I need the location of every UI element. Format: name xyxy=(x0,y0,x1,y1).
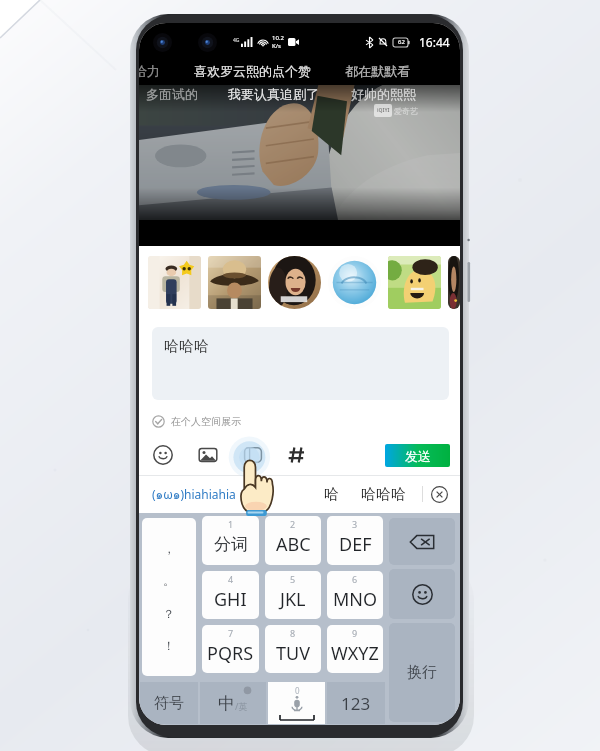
staticText: ABC xyxy=(276,532,311,557)
staticText: MNO xyxy=(333,587,378,612)
staticText: JKL xyxy=(280,587,306,612)
button[interactable]: 8 xyxy=(265,625,321,673)
staticText: 哈哈哈 xyxy=(361,485,406,504)
button[interactable]: Emoji xyxy=(153,445,173,465)
staticText: K/s xyxy=(272,42,281,50)
staticText: 16:44 xyxy=(419,34,450,50)
button[interactable]: 在个人空间展示 xyxy=(152,413,241,429)
button[interactable]: 符号 xyxy=(140,682,198,724)
staticText: 分词 xyxy=(214,534,248,555)
staticText: GHI xyxy=(214,587,247,612)
staticText: ！ xyxy=(163,638,175,653)
staticText: (๑ω๑)hiahiahia xyxy=(152,485,236,504)
button[interactable]: 0 xyxy=(268,682,325,724)
button[interactable]: Backspace xyxy=(389,518,455,565)
staticText: 好帅的熙熙 xyxy=(351,86,416,102)
button[interactable]: 7 xyxy=(202,625,259,673)
staticText: 爱奇艺 xyxy=(394,106,418,116)
staticText: 62 xyxy=(398,38,405,46)
staticText: 我要认真追剧了 xyxy=(228,86,319,102)
staticText: WXYZ xyxy=(331,641,379,666)
staticText: 。 xyxy=(163,573,175,588)
staticText: 4 xyxy=(228,573,234,585)
staticText: 3 xyxy=(352,518,358,530)
staticText: 换行 xyxy=(407,663,437,682)
button[interactable]: 中 xyxy=(200,682,266,724)
button[interactable] xyxy=(388,256,441,309)
staticText: 123 xyxy=(341,692,371,715)
staticText: 9 xyxy=(352,627,358,639)
button[interactable]: Close candidates xyxy=(431,486,448,503)
staticText: 5 xyxy=(290,573,296,585)
staticText: 发送 xyxy=(405,448,431,464)
staticText: 1 xyxy=(228,518,234,530)
button[interactable]: 6 xyxy=(327,571,383,619)
button[interactable]: 2 xyxy=(265,516,321,565)
staticText: ， xyxy=(163,541,175,556)
staticText: 在个人空间展示 xyxy=(171,415,241,428)
staticText: 多面试的 xyxy=(146,86,198,102)
staticText: 10.2 xyxy=(272,34,284,42)
button[interactable]: 1 xyxy=(202,516,259,565)
button[interactable] xyxy=(148,256,201,309)
staticText: 0 xyxy=(295,685,300,696)
button[interactable]: 换行 xyxy=(389,623,455,722)
staticText: 2 xyxy=(290,518,296,530)
staticText: 7 xyxy=(228,627,234,639)
button[interactable]: 4 xyxy=(202,571,259,619)
staticText: 4G xyxy=(233,37,240,44)
staticText: 都在默默看 xyxy=(345,63,410,79)
staticText: 喜欢罗云熙的点个赞 xyxy=(194,63,311,79)
staticText: 8 xyxy=(290,627,296,639)
staticText: 中 xyxy=(218,693,235,714)
staticText: 哈哈哈 xyxy=(164,337,209,356)
staticText: 6 xyxy=(352,573,358,585)
staticText: TUV xyxy=(276,641,310,666)
button[interactable] xyxy=(268,256,321,309)
button[interactable]: 9 xyxy=(327,625,383,673)
staticText: /英 xyxy=(235,700,248,712)
button[interactable]: 123 xyxy=(327,682,385,724)
button[interactable]: Photo xyxy=(198,445,218,465)
button[interactable] xyxy=(448,256,460,309)
button[interactable] xyxy=(208,256,261,309)
staticText: DEF xyxy=(339,532,372,557)
button[interactable]: Sticker xyxy=(243,445,263,465)
button[interactable]: 哈哈哈 xyxy=(152,327,449,400)
staticText: ？ xyxy=(163,606,175,621)
staticText: PQRS xyxy=(207,641,254,666)
staticText: 符号 xyxy=(154,694,184,713)
button[interactable]: Topic xyxy=(286,444,308,466)
staticText: 给力 xyxy=(139,63,160,79)
button[interactable]: 3 xyxy=(327,516,383,565)
button[interactable] xyxy=(328,256,381,309)
button[interactable]: 发送 xyxy=(385,444,450,467)
staticText: iQIYI xyxy=(377,107,390,114)
staticText: 哈 xyxy=(324,485,339,504)
button[interactable]: 5 xyxy=(265,571,321,619)
button[interactable]: Emoji keyboard xyxy=(389,569,455,619)
button[interactable]: ， xyxy=(142,518,196,676)
